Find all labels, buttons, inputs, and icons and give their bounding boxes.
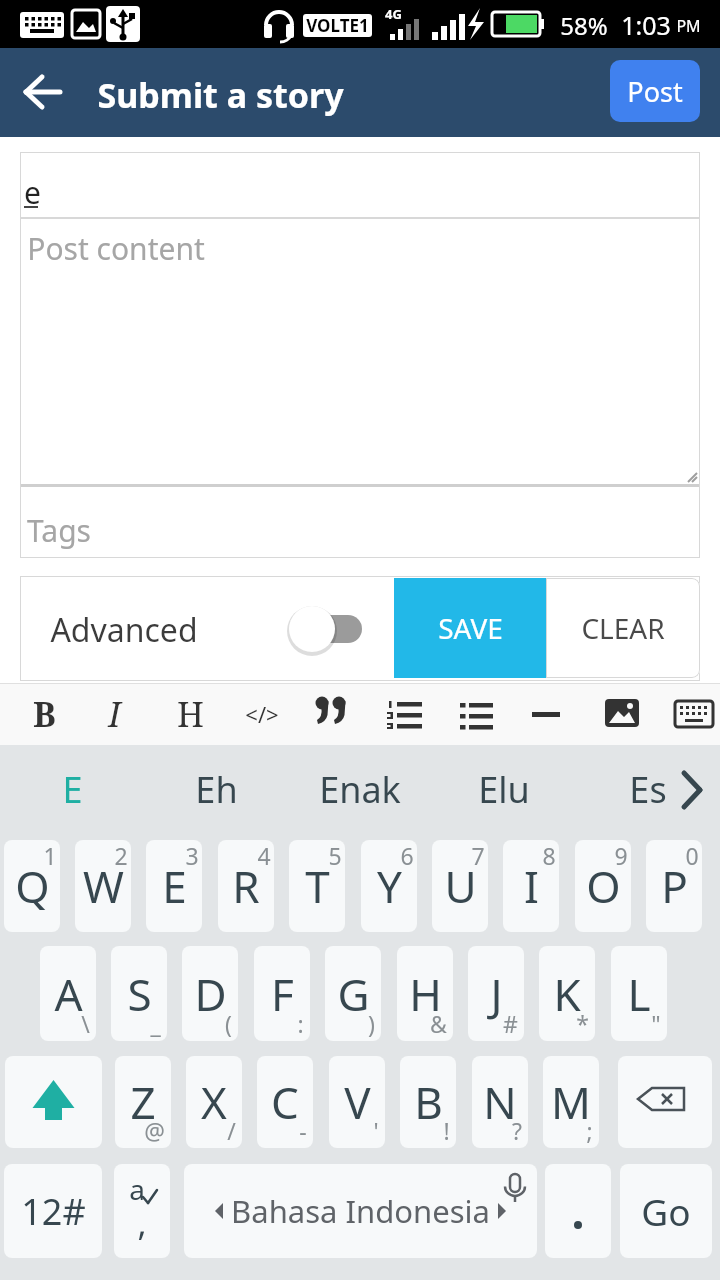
button[interactable]: B — [400, 1056, 456, 1148]
staticText: ) — [368, 1008, 375, 1039]
button[interactable]: D — [182, 946, 238, 1041]
staticText: SAVE — [438, 609, 503, 647]
button[interactable]: Y — [361, 840, 417, 932]
button[interactable] — [666, 683, 720, 745]
staticText: P — [661, 856, 688, 916]
staticText: 6 — [400, 840, 414, 871]
staticText: D — [194, 964, 227, 1024]
button[interactable]: H — [162, 683, 218, 745]
button[interactable]: S — [111, 946, 167, 1041]
button[interactable]: </> — [234, 683, 290, 745]
button[interactable] — [545, 1164, 611, 1258]
button[interactable]: Bahasa Indonesia — [184, 1164, 537, 1258]
staticText: X — [201, 1072, 227, 1132]
button[interactable]: K — [539, 946, 595, 1041]
button[interactable]: 12# — [4, 1164, 102, 1258]
button[interactable]: I — [86, 683, 142, 745]
button[interactable]: C — [257, 1056, 313, 1148]
button[interactable] — [594, 683, 650, 745]
staticText: G — [337, 964, 370, 1024]
button[interactable] — [270, 600, 380, 660]
button[interactable]: J — [468, 946, 524, 1041]
staticText: I — [524, 856, 539, 916]
staticText: 4 — [257, 840, 271, 871]
button[interactable] — [377, 683, 433, 745]
button[interactable]: B — [16, 683, 72, 745]
button[interactable]: Z — [115, 1056, 171, 1148]
button[interactable] — [20, 152, 700, 218]
button[interactable]: CLEAR — [546, 578, 700, 678]
staticText: 58% — [560, 9, 608, 42]
staticText: C — [271, 1072, 299, 1132]
staticText: PM — [676, 15, 701, 37]
button[interactable]: A — [40, 946, 96, 1041]
staticText: Z — [130, 1072, 156, 1132]
staticText: 7 — [471, 840, 485, 871]
button[interactable]: U — [432, 840, 488, 932]
button[interactable]: Es — [588, 755, 708, 823]
button[interactable]: N — [472, 1056, 528, 1148]
staticText: e — [24, 172, 41, 213]
button[interactable]: E — [146, 840, 202, 932]
staticText: Go — [641, 1186, 691, 1236]
staticText: Enak — [319, 765, 401, 814]
button[interactable] — [618, 1056, 712, 1148]
button[interactable]: E — [12, 755, 132, 823]
button[interactable] — [20, 487, 700, 558]
button[interactable]: O — [575, 840, 631, 932]
button[interactable]: Elu — [444, 755, 564, 823]
button[interactable]: Go — [620, 1164, 712, 1258]
staticText: Q — [15, 856, 50, 916]
staticText: 12# — [21, 1187, 86, 1236]
staticText: M — [551, 1072, 591, 1132]
staticText: Post — [627, 73, 683, 110]
button[interactable]: L — [611, 946, 667, 1041]
staticText: 8 — [542, 840, 556, 871]
button[interactable] — [20, 218, 700, 486]
staticText: L — [627, 964, 651, 1024]
button[interactable] — [305, 683, 361, 745]
staticText: V — [344, 1072, 371, 1132]
staticText: / — [227, 1115, 236, 1146]
staticText: \ — [81, 1008, 90, 1039]
button[interactable]: a — [114, 1164, 170, 1258]
button[interactable]: R — [218, 840, 274, 932]
button[interactable]: X — [186, 1056, 242, 1148]
button[interactable]: I — [503, 840, 559, 932]
staticText: 3 — [185, 840, 199, 871]
staticText: 4G — [385, 5, 402, 23]
staticText: </> — [245, 699, 279, 729]
button[interactable] — [518, 683, 574, 745]
button[interactable]: Eh — [156, 755, 276, 823]
staticText: CLEAR — [581, 609, 665, 647]
staticText: VOLTE1 — [306, 14, 369, 37]
staticText: " — [651, 1008, 661, 1039]
button[interactable]: Post — [610, 60, 700, 122]
staticText: ? — [512, 1115, 522, 1146]
button[interactable]: V — [329, 1056, 385, 1148]
button[interactable] — [16, 64, 72, 120]
button[interactable] — [5, 1056, 102, 1148]
staticText: Es — [629, 765, 667, 814]
staticText: Post content — [27, 228, 205, 269]
button[interactable]: F — [254, 946, 310, 1041]
button[interactable]: W — [75, 840, 131, 932]
staticText: R — [232, 856, 260, 916]
staticText: J — [490, 964, 503, 1024]
button[interactable]: M — [543, 1056, 599, 1148]
button[interactable]: T — [289, 840, 345, 932]
button[interactable]: Enak — [300, 755, 420, 823]
staticText: 2 — [114, 840, 128, 871]
button[interactable]: H — [397, 946, 453, 1041]
staticText: T — [305, 856, 330, 916]
staticText: A — [54, 964, 83, 1024]
button[interactable]: G — [325, 946, 381, 1041]
button[interactable] — [449, 683, 505, 745]
button[interactable]: Q — [4, 840, 60, 932]
button[interactable]: SAVE — [394, 578, 546, 678]
button[interactable]: P — [646, 840, 702, 932]
staticText: Tags — [27, 510, 91, 551]
staticText: Bahasa Indonesia — [231, 1190, 490, 1232]
staticText: W — [83, 856, 124, 916]
staticText: H — [409, 964, 442, 1024]
